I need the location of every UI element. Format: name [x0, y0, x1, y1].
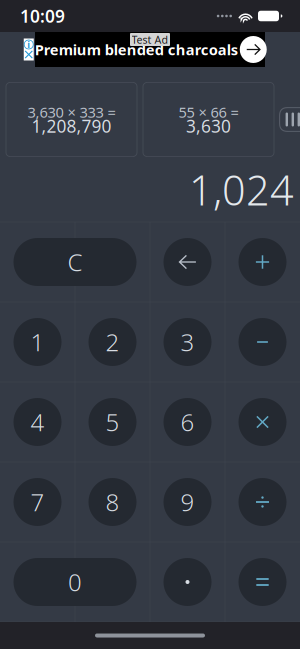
- staticText: i: [27, 38, 30, 51]
- button[interactable]: Decimal point: [150, 542, 225, 622]
- button[interactable]: 6: [150, 382, 225, 462]
- staticText: 0: [68, 566, 82, 598]
- staticText: C: [67, 246, 82, 278]
- button[interactable]: Multiply: [225, 382, 300, 462]
- button[interactable]: Backspace: [150, 222, 225, 302]
- button[interactable]: 1: [0, 302, 75, 382]
- staticText: 55 × 66 =: [178, 102, 238, 122]
- staticText: 3,630: [186, 114, 231, 137]
- button[interactable]: 3: [150, 302, 225, 382]
- staticText: 3,630 × 333 =: [27, 102, 115, 122]
- button[interactable]: Show history: [279, 107, 300, 132]
- button[interactable]: Open advertisement: [238, 32, 269, 67]
- staticText: 2: [105, 326, 119, 358]
- button[interactable]: 2: [75, 302, 150, 382]
- button[interactable]: 5: [75, 382, 150, 462]
- staticText: 10:09: [20, 4, 65, 27]
- staticText: 1,024: [189, 162, 294, 217]
- staticText: 8: [105, 486, 119, 518]
- staticText: Test Ad: [131, 32, 168, 47]
- button[interactable]: 8: [75, 462, 150, 542]
- button[interactable]: Clear: [0, 222, 150, 302]
- button[interactable]: 7: [0, 462, 75, 542]
- button[interactable]: 4: [0, 382, 75, 462]
- button[interactable]: Minus: [225, 302, 300, 382]
- button[interactable]: 55 × 66 =: [143, 82, 274, 156]
- button[interactable]: Zero: [0, 542, 150, 622]
- staticText: 5: [105, 406, 119, 438]
- staticText: 9: [180, 486, 194, 518]
- staticText: 1: [30, 326, 44, 358]
- staticText: 4: [30, 406, 44, 438]
- staticText: 3: [180, 326, 194, 358]
- button[interactable]: Plus: [225, 222, 300, 302]
- button[interactable]: 9: [150, 462, 225, 542]
- staticText: 7: [30, 486, 44, 518]
- button[interactable]: 3,630 × 333 =: [6, 82, 137, 156]
- button[interactable]: Equals: [225, 542, 300, 622]
- staticText: 1,208,790: [31, 114, 111, 137]
- staticText: 6: [180, 406, 194, 438]
- button[interactable]: Divide: [225, 462, 300, 542]
- staticText: Premium blended charcoals: [35, 40, 238, 59]
